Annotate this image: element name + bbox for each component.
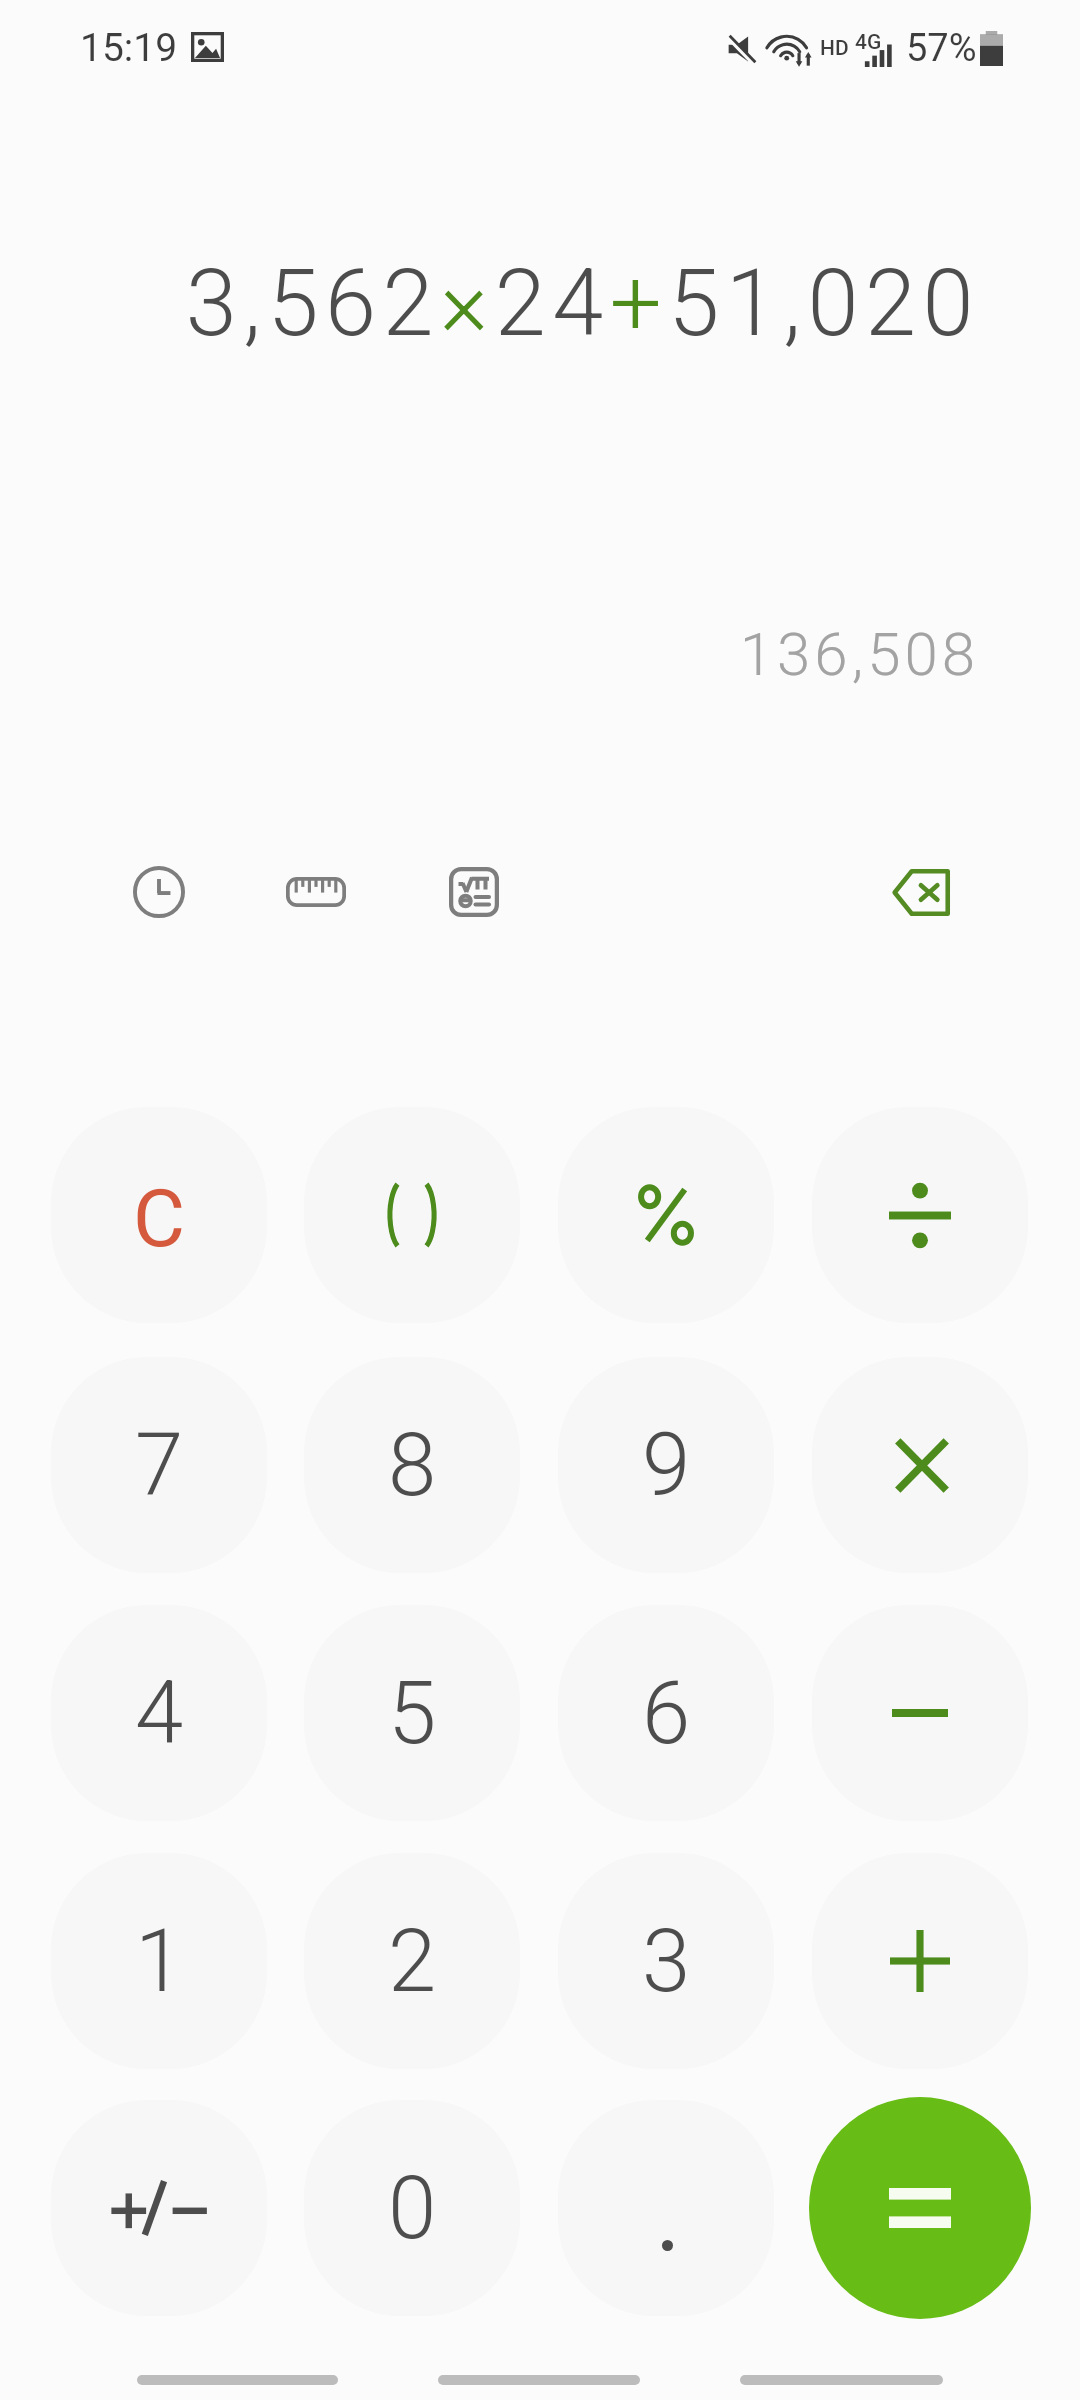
staticText: 3 (642, 1910, 691, 2012)
button[interactable]: Unit converter (268, 844, 364, 940)
button[interactable]: Home (398, 2330, 680, 2400)
button[interactable]: Plus minus (51, 2100, 267, 2316)
staticText: 15:19 (80, 25, 178, 71)
button[interactable]: Multiply (812, 1357, 1028, 1573)
button[interactable]: Parentheses (304, 1107, 520, 1323)
button[interactable]: 8 (304, 1357, 520, 1573)
staticText: 5 (388, 1662, 437, 1764)
button[interactable]: 2 (304, 1853, 520, 2069)
button[interactable]: Scientific calculator (426, 844, 522, 940)
button[interactable]: Decimal point (558, 2100, 774, 2316)
button[interactable]: Back (700, 2330, 983, 2400)
button[interactable]: Recents (97, 2330, 378, 2400)
button[interactable]: Subtract (812, 1605, 1028, 1821)
staticText: 3,562×24+51,020 (0, 250, 980, 358)
staticText: 4G (855, 30, 882, 55)
staticText: 8 (388, 1414, 437, 1516)
button[interactable]: 0 (304, 2100, 520, 2316)
staticText: 2 (388, 1910, 437, 2012)
button[interactable]: 4 (51, 1605, 267, 1821)
staticText: 7 (135, 1414, 184, 1516)
button[interactable]: Equals (809, 2097, 1031, 2319)
button[interactable]: 7 (51, 1357, 267, 1573)
button[interactable]: Percent (558, 1107, 774, 1323)
staticText: 1 (135, 1910, 184, 2012)
staticText: 0 (388, 2157, 437, 2259)
button[interactable]: 6 (558, 1605, 774, 1821)
button[interactable]: 9 (558, 1357, 774, 1573)
staticText: 57% (906, 26, 977, 71)
staticText: 6 (642, 1662, 691, 1764)
button[interactable]: Backspace (873, 844, 969, 940)
button[interactable]: Add (812, 1853, 1028, 2069)
staticText: 9 (642, 1414, 691, 1516)
button[interactable]: History (111, 844, 207, 940)
staticText: C (133, 1172, 186, 1266)
button[interactable]: Divide (812, 1107, 1028, 1323)
button[interactable]: 5 (304, 1605, 520, 1821)
staticText: HD (820, 36, 849, 61)
button[interactable]: 1 (51, 1853, 267, 2069)
staticText: 136,508 (0, 619, 979, 689)
button[interactable]: Clear (51, 1107, 267, 1323)
button[interactable]: 3 (558, 1853, 774, 2069)
staticText: 4 (135, 1662, 184, 1764)
